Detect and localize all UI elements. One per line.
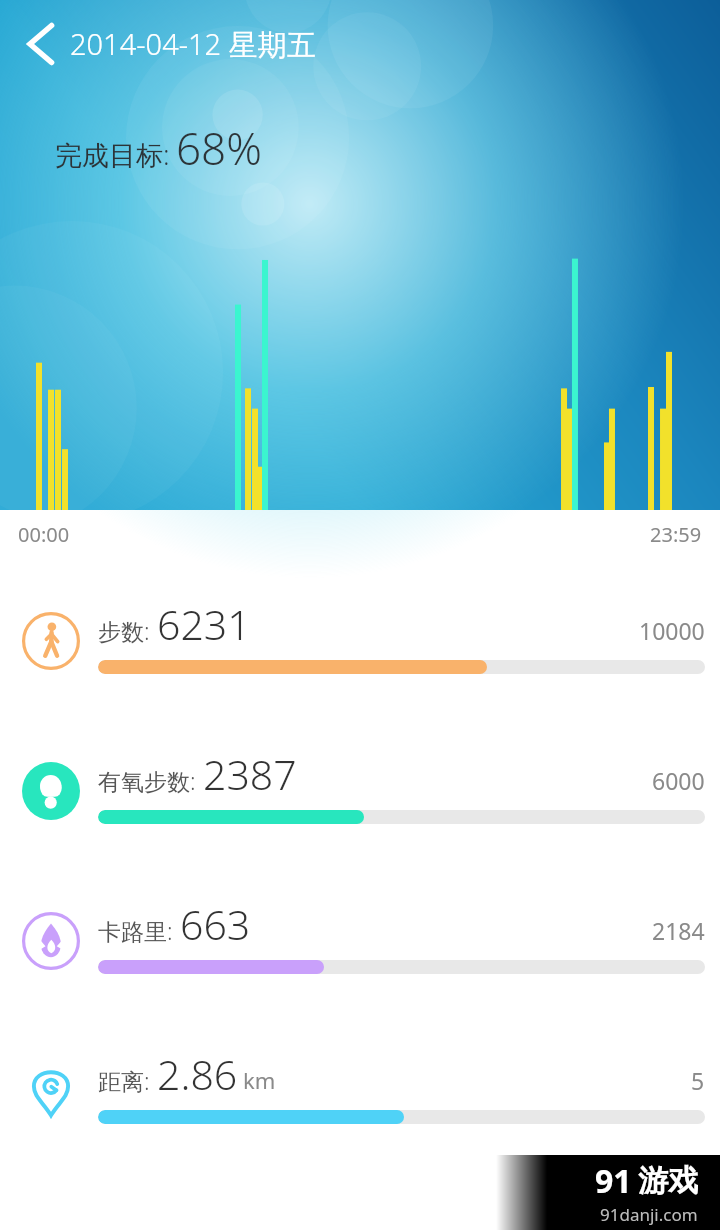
staticText: 距离:	[98, 1065, 150, 1096]
staticText: 2.86	[157, 1046, 238, 1102]
staticText: 游戏	[638, 1162, 698, 1200]
other: 有氧步数:	[22, 762, 80, 820]
button[interactable]: 步数:	[0, 596, 720, 746]
button[interactable]: 距离:	[0, 1046, 720, 1196]
staticText: 完成目标:	[55, 136, 170, 173]
staticText: 91	[595, 1159, 632, 1203]
staticText: 663	[180, 896, 251, 952]
other: 距离:	[22, 1062, 80, 1120]
staticText: km	[243, 1065, 276, 1095]
staticText: 2184	[652, 915, 705, 946]
other: 卡路里:	[22, 912, 80, 970]
staticText: 00:00	[18, 521, 70, 548]
button[interactable]: 卡路里:	[0, 896, 720, 1046]
staticText: 10000	[639, 615, 705, 646]
staticText: 23:59	[650, 521, 702, 548]
staticText: 有氧步数:	[98, 765, 196, 796]
staticText: 5	[691, 1065, 705, 1096]
staticText: 68%	[176, 118, 262, 178]
staticText: 步数:	[98, 615, 150, 646]
staticText: 2387	[203, 746, 297, 802]
staticText: 6231	[157, 596, 251, 652]
staticText: 91danji.com	[600, 1203, 698, 1226]
button[interactable]: Back	[14, 16, 70, 72]
staticText: 卡路里:	[98, 915, 173, 946]
staticText: 6000	[652, 765, 705, 796]
button[interactable]: 有氧步数:	[0, 746, 720, 896]
staticText: 2014-04-12 星期五	[70, 24, 316, 64]
other: 步数:	[22, 612, 80, 670]
